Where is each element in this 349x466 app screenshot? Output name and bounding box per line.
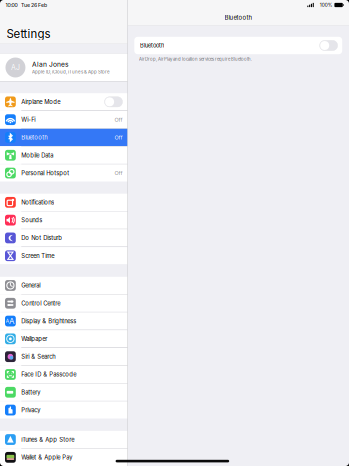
staticText: AirDrop, AirPlay and location services r…: [139, 57, 252, 62]
staticText: Apple ID, iCloud, iTunes & App Store: [32, 69, 110, 75]
staticText: Alan Jones: [32, 60, 69, 68]
staticText: Wallpaper: [21, 335, 47, 342]
button[interactable]: Wallpaper: [0, 330, 127, 347]
staticText: 100%: [320, 2, 333, 8]
staticText: Bluetooth: [21, 134, 47, 141]
button[interactable]: Do Not Disturb: [0, 229, 127, 247]
staticText: Tue 26 Feb: [21, 2, 47, 8]
staticText: Off: [114, 170, 122, 176]
staticText: Bluetooth: [140, 42, 164, 49]
button[interactable]: Wallet & Apple Pay: [0, 449, 127, 466]
staticText: Battery: [21, 389, 40, 396]
staticText: Mobile Data: [21, 152, 53, 159]
staticText: 10:00: [5, 2, 17, 8]
staticText: Wi-Fi: [21, 116, 35, 123]
button[interactable]: Airplane Mode: [0, 93, 127, 110]
staticText: A: [6, 318, 9, 324]
staticText: Siri & Search: [21, 353, 55, 360]
staticText: Airplane Mode: [21, 98, 60, 105]
button[interactable]: Control Centre: [0, 295, 127, 312]
button[interactable]: Battery: [0, 384, 127, 401]
button[interactable]: iTunes & App Store: [0, 431, 127, 448]
staticText: Privacy: [21, 406, 40, 414]
staticText: iTunes & App Store: [21, 436, 74, 443]
staticText: Personal Hotspot: [21, 169, 69, 177]
staticText: Display & Brightness: [21, 317, 76, 325]
staticText: Off: [114, 134, 122, 141]
button[interactable]: Privacy: [0, 401, 127, 419]
button[interactable]: Face ID & Passcode: [0, 366, 127, 383]
staticText: AJ: [11, 63, 20, 72]
staticText: Do Not Disturb: [21, 234, 62, 241]
button[interactable]: Siri & Search: [0, 348, 127, 365]
staticText: Off: [114, 116, 122, 123]
staticText: Bluetooth: [224, 14, 252, 21]
staticText: Screen Time: [21, 252, 54, 259]
button[interactable]: General: [0, 277, 127, 294]
button[interactable]: A: [0, 312, 127, 330]
button[interactable]: Sounds: [0, 211, 127, 229]
staticText: A: [9, 316, 15, 326]
staticText: Notifications: [21, 199, 54, 206]
button[interactable]: Wi-Fi: [0, 111, 127, 128]
button[interactable]: Mobile Data: [0, 147, 127, 164]
button[interactable]: AJ: [0, 53, 127, 81]
button[interactable]: Bluetooth: [0, 129, 127, 146]
staticText: Sounds: [21, 217, 42, 224]
staticText: Wallet & Apple Pay: [21, 454, 72, 461]
staticText: General: [21, 282, 40, 289]
staticText: Face ID & Passcode: [21, 371, 76, 378]
staticText: Settings: [7, 27, 51, 41]
button[interactable]: Notifications: [0, 194, 127, 211]
button[interactable]: Screen Time: [0, 247, 127, 264]
staticText: Control Centre: [21, 300, 60, 307]
button[interactable]: Personal Hotspot: [0, 164, 127, 182]
